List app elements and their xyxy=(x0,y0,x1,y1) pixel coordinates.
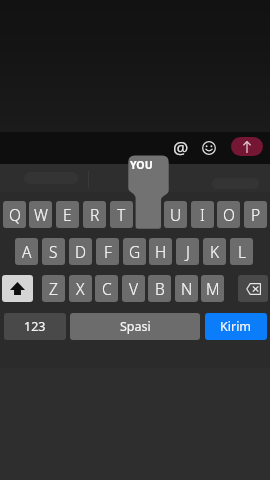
button[interactable]: R xyxy=(83,201,106,228)
button[interactable]: J xyxy=(176,238,199,265)
button[interactable]: Z xyxy=(42,275,65,302)
staticText: S xyxy=(49,241,58,262)
staticText: Q xyxy=(9,204,21,225)
staticText: N xyxy=(181,278,193,299)
staticText: K xyxy=(210,241,220,262)
staticText: D xyxy=(75,241,87,262)
staticText: Spasi xyxy=(120,318,151,335)
staticText: T xyxy=(117,204,126,225)
button[interactable]: K xyxy=(203,238,226,265)
button[interactable]: F xyxy=(96,238,119,265)
staticText: Kirim xyxy=(220,318,252,335)
button[interactable]: P xyxy=(244,201,267,228)
button[interactable]: Kirim xyxy=(205,313,267,340)
staticText: @ xyxy=(173,136,189,159)
staticText: G xyxy=(129,241,141,262)
staticText: O xyxy=(223,204,235,225)
staticText: M xyxy=(206,278,220,299)
staticText: F xyxy=(104,241,112,262)
button[interactable]: G xyxy=(123,238,146,265)
button[interactable]: L xyxy=(230,238,253,265)
staticText: R xyxy=(90,204,100,225)
button[interactable]: T xyxy=(110,201,133,228)
button[interactable]: V xyxy=(122,275,145,302)
button[interactable]: S xyxy=(42,238,65,265)
staticText: W xyxy=(34,204,48,225)
staticText: H xyxy=(155,241,167,262)
button[interactable]: N xyxy=(175,275,198,302)
staticText: I xyxy=(200,204,205,225)
button[interactable]: Backspace xyxy=(238,275,268,302)
staticText: J xyxy=(186,241,190,262)
staticText: YOU xyxy=(130,158,153,172)
button[interactable]: C xyxy=(95,275,118,302)
button[interactable]: Q xyxy=(3,201,26,228)
staticText: P xyxy=(251,204,261,225)
button[interactable]: M xyxy=(201,275,224,302)
button[interactable]: Send xyxy=(231,137,263,156)
button[interactable]: X xyxy=(69,275,92,302)
button[interactable]: Spasi xyxy=(70,313,200,340)
staticText: V xyxy=(129,278,139,299)
button[interactable]: Emoji xyxy=(195,134,222,161)
button[interactable]: 123 xyxy=(4,313,66,340)
staticText: B xyxy=(155,278,165,299)
staticText: 123 xyxy=(24,318,46,335)
button[interactable]: U xyxy=(164,201,187,228)
button[interactable]: B xyxy=(148,275,171,302)
staticText: C xyxy=(102,278,112,299)
staticText: A xyxy=(22,241,32,262)
button[interactable]: E xyxy=(56,201,79,228)
button[interactable]: A xyxy=(15,238,38,265)
staticText: U xyxy=(170,204,182,225)
staticText: L xyxy=(238,241,246,262)
staticText: X xyxy=(76,278,85,299)
button[interactable]: Shift xyxy=(2,275,33,302)
staticText: E xyxy=(63,204,72,225)
button[interactable]: I xyxy=(191,201,214,228)
button[interactable]: W xyxy=(29,201,52,228)
button[interactable]: D xyxy=(69,238,92,265)
button[interactable]: O xyxy=(217,201,240,228)
button[interactable]: H xyxy=(149,238,172,265)
button[interactable]: Mention xyxy=(167,134,194,161)
staticText: Z xyxy=(49,278,58,299)
